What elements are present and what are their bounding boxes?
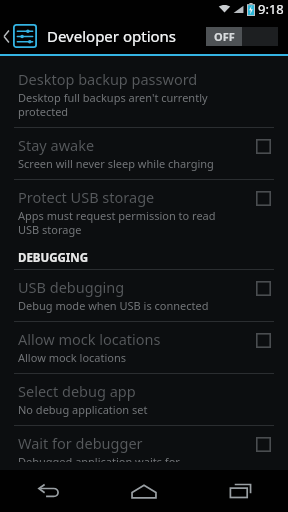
staticText: Stay awake bbox=[18, 135, 95, 155]
button[interactable]: Protect USB storage bbox=[0, 180, 288, 245]
button[interactable]: Home bbox=[96, 470, 192, 512]
button[interactable]: Recent apps bbox=[192, 470, 288, 512]
staticText: Allow mock locations bbox=[18, 350, 127, 365]
button[interactable]: Select debug app bbox=[0, 374, 288, 425]
staticText: Protect USB storage bbox=[18, 187, 155, 207]
staticText: USB debugging bbox=[18, 277, 125, 297]
button[interactable]: USB debugging bbox=[0, 270, 288, 321]
staticText: Developer options bbox=[47, 26, 177, 46]
staticText: Desktop backup password bbox=[18, 69, 198, 89]
staticText: No debug application set bbox=[18, 402, 148, 417]
staticText: Desktop full backups aren't currently pr… bbox=[18, 90, 242, 119]
button[interactable]: Allow mock locations bbox=[0, 322, 288, 373]
button[interactable]: Navigate up bbox=[0, 18, 41, 54]
staticText: Select debug app bbox=[18, 381, 136, 401]
staticText: 9:18 bbox=[258, 0, 284, 18]
button[interactable]: Wait for debugger bbox=[0, 426, 288, 470]
staticText: Allow mock locations bbox=[18, 329, 161, 349]
button[interactable]: Desktop backup password bbox=[0, 62, 288, 127]
staticText: Screen will never sleep while charging bbox=[18, 156, 214, 171]
staticText: Apps must request permission to read USB… bbox=[18, 208, 216, 237]
button[interactable]: Stay awake bbox=[0, 128, 288, 179]
staticText: Wait for debugger bbox=[18, 433, 143, 453]
button[interactable]: Developer options on/off switch bbox=[206, 27, 288, 46]
staticText: DEBUGGING bbox=[18, 250, 88, 266]
staticText: Debug mode when USB is connected bbox=[18, 298, 209, 313]
button[interactable]: Back bbox=[0, 470, 96, 512]
staticText: Debugged application waits for debugger … bbox=[18, 454, 208, 462]
staticText: OFF bbox=[214, 29, 235, 44]
